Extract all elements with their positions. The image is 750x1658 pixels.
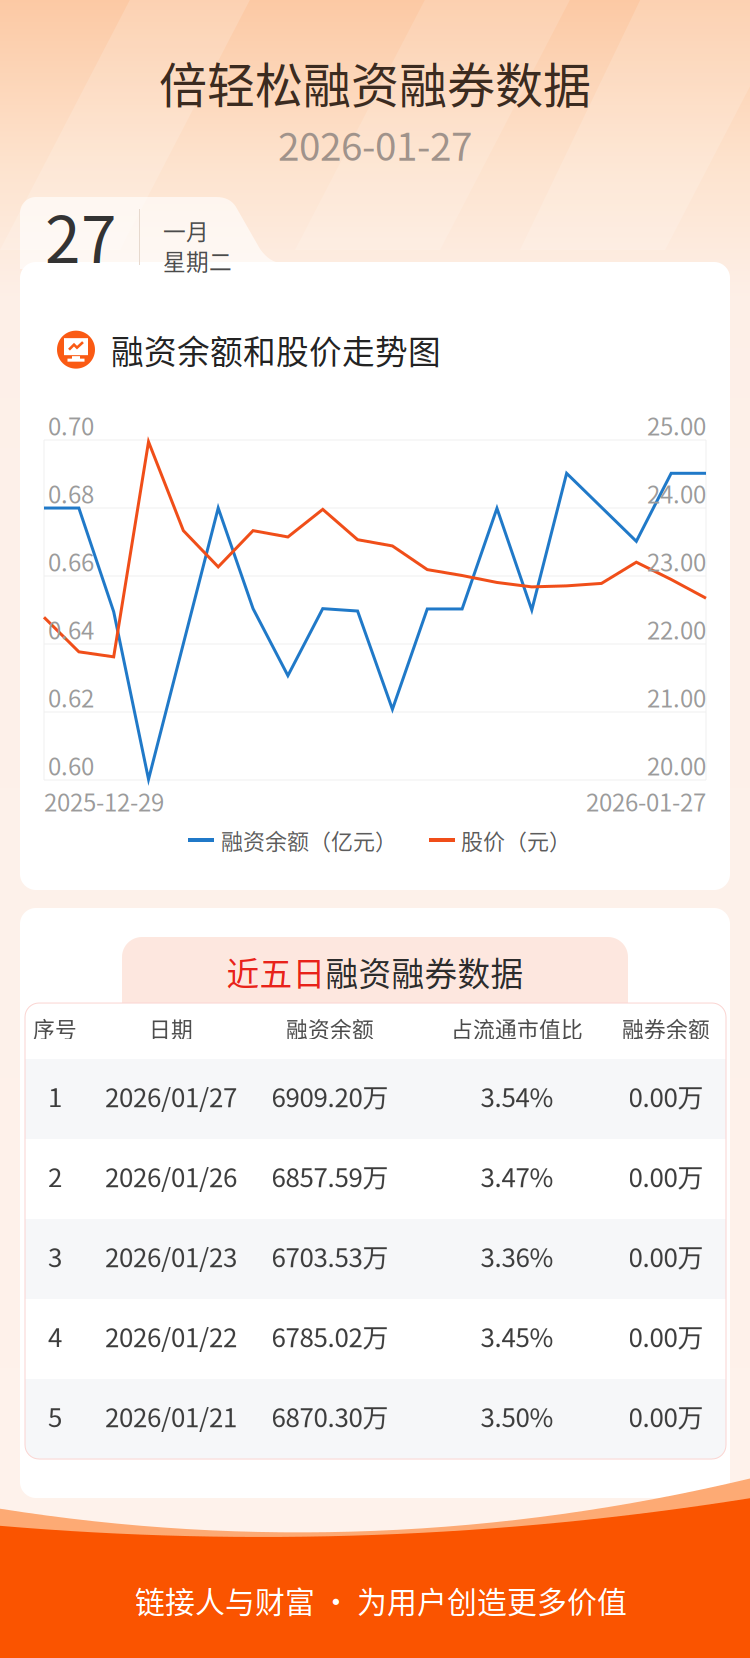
staticText: 近五日 <box>226 948 325 995</box>
staticText: 3 <box>48 1237 62 1275</box>
staticText: 3.47% <box>480 1157 553 1195</box>
staticText: 0.60 <box>48 748 94 782</box>
staticText: 2026/01/22 <box>105 1317 237 1355</box>
staticText: 融资余额（亿元） <box>221 824 397 856</box>
staticText: 2026-01-27 <box>586 784 706 818</box>
staticText: 21.00 <box>647 680 706 714</box>
staticText: 20.00 <box>647 748 706 782</box>
staticText: 24.00 <box>647 476 706 510</box>
staticText: 27 <box>45 189 117 281</box>
staticText: 2026/01/23 <box>105 1237 237 1275</box>
staticText: 3.54% <box>480 1077 553 1115</box>
staticText: 22.00 <box>647 612 706 646</box>
staticText: 融资余额 <box>286 1012 374 1044</box>
staticText: 23.00 <box>647 544 706 578</box>
staticText: 0.00万 <box>628 1157 703 1195</box>
staticText: 2026/01/27 <box>105 1077 237 1115</box>
staticText: 序号 <box>33 1012 77 1044</box>
staticText: 倍轻松融资融券数据 <box>159 47 591 117</box>
staticText: 25.00 <box>647 408 706 442</box>
staticText: 0.70 <box>48 408 94 442</box>
staticText: 股价（元） <box>461 824 571 856</box>
staticText: 6909.20万 <box>271 1077 388 1115</box>
staticText: 日期 <box>149 1012 193 1044</box>
staticText: 6857.59万 <box>271 1157 388 1195</box>
staticText: 0.00万 <box>628 1077 703 1115</box>
staticText: 0.00万 <box>628 1317 703 1355</box>
staticText: 融资融券数据 <box>325 948 523 995</box>
staticText: 占流通市值比 <box>451 1012 583 1044</box>
staticText: 融资余额和股价走势图 <box>111 326 441 373</box>
staticText: 3.45% <box>480 1317 553 1355</box>
staticText: 融券余额 <box>622 1012 710 1044</box>
staticText: 6785.02万 <box>271 1317 388 1355</box>
staticText: 0.68 <box>48 476 94 510</box>
staticText: 0.00万 <box>628 1237 703 1275</box>
staticText: 一月 <box>163 214 209 247</box>
staticText: 6870.30万 <box>271 1397 388 1435</box>
staticText: 星期二 <box>163 244 232 277</box>
staticText: 0.62 <box>48 680 94 714</box>
staticText: 1 <box>48 1077 62 1115</box>
staticText: 0.64 <box>48 612 94 646</box>
staticText: 2025-12-29 <box>44 784 164 818</box>
staticText: 0.66 <box>48 544 94 578</box>
staticText: 5 <box>48 1397 62 1435</box>
staticText: 6703.53万 <box>271 1237 388 1275</box>
staticText: 3.36% <box>480 1237 553 1275</box>
staticText: 2026/01/21 <box>105 1397 237 1435</box>
staticText: 0.00万 <box>628 1397 703 1435</box>
staticText: 3.50% <box>480 1397 553 1435</box>
staticText: 2026-01-27 <box>278 116 472 172</box>
staticText: 2026/01/26 <box>105 1157 237 1195</box>
staticText: 4 <box>48 1317 62 1355</box>
staticText: 链接人与财富 · 为用户创造更多价值 <box>135 1578 627 1622</box>
staticText: 2 <box>48 1157 62 1195</box>
